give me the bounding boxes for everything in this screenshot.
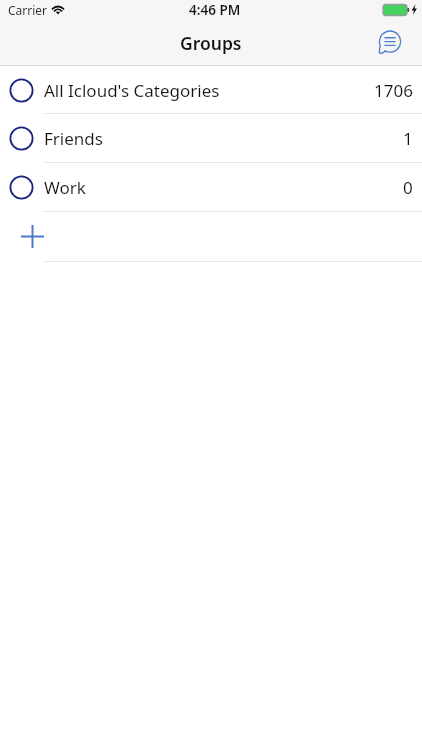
button[interactable]: Work: [0, 163, 422, 212]
staticText: Carrier: [8, 2, 48, 18]
button[interactable]: Messages: [375, 28, 405, 58]
other: Battery charging: [383, 4, 417, 16]
staticText: 1706: [374, 79, 413, 102]
staticText: 4:46 PM: [189, 1, 241, 19]
staticText: 1: [403, 127, 413, 150]
staticText: All Icloud's Categories: [44, 79, 220, 102]
button[interactable]: All Icloud's Categories: [0, 66, 422, 114]
button[interactable]: Friends: [0, 114, 422, 163]
staticText: Work: [44, 176, 86, 199]
button[interactable]: Add group: [0, 212, 422, 262]
staticText: Groups: [180, 31, 242, 55]
staticText: Friends: [44, 127, 103, 150]
staticText: 0: [403, 176, 413, 199]
